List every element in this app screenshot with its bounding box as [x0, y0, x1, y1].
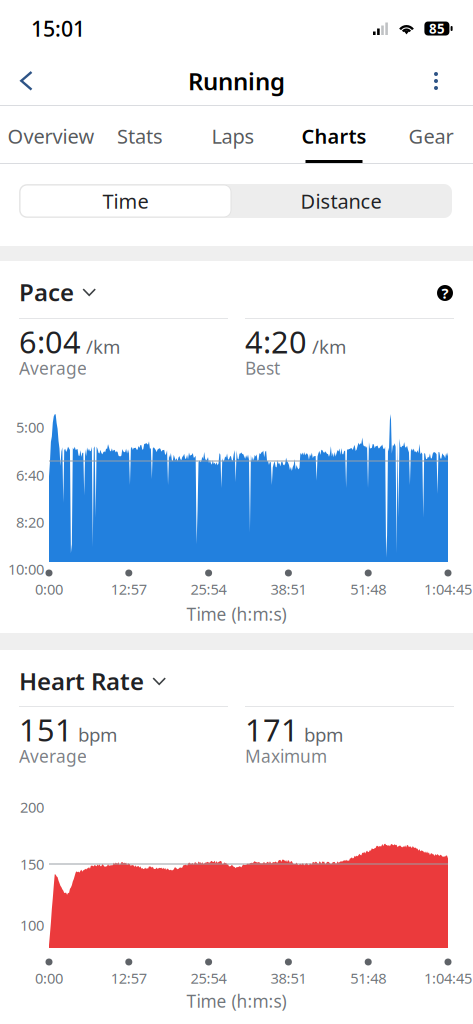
staticText: 6:04 — [19, 321, 81, 362]
staticText: 150 — [20, 854, 44, 874]
button[interactable]: Pace — [19, 279, 259, 305]
staticText: Average — [19, 744, 87, 767]
button[interactable]: Gear — [385, 106, 473, 163]
staticText: 12:57 — [111, 579, 147, 599]
staticText: Best — [245, 356, 280, 379]
staticText: Distance — [300, 188, 381, 214]
staticText: 15:01 — [31, 14, 85, 43]
staticText: 5:00 — [16, 417, 44, 437]
button[interactable]: Stats — [92, 106, 188, 163]
staticText: Charts — [301, 123, 366, 149]
staticText: bpm — [73, 722, 117, 747]
staticText: 100 — [20, 915, 44, 935]
staticText: 12:57 — [111, 968, 147, 988]
staticText: Average — [19, 356, 87, 379]
staticText: bpm — [299, 722, 343, 747]
staticText: Maximum — [245, 744, 327, 767]
staticText: 38:51 — [270, 968, 306, 988]
staticText: Running — [188, 65, 285, 97]
button[interactable]: Heart Rate — [19, 668, 259, 694]
staticText: 25:54 — [191, 968, 227, 988]
staticText: 51:48 — [350, 579, 386, 599]
staticText: Gear — [408, 123, 453, 149]
button[interactable]: Time — [20, 185, 231, 217]
staticText: 200 — [20, 797, 44, 817]
staticText: 0:00 — [35, 968, 63, 988]
staticText: 8:20 — [16, 512, 44, 532]
button[interactable]: Distance — [231, 185, 451, 217]
staticText: ? — [441, 283, 448, 303]
staticText: 6:40 — [16, 465, 44, 485]
staticText: 85 — [429, 20, 445, 37]
staticText: 171 — [245, 709, 299, 750]
staticText: 1:04:45 — [424, 968, 472, 988]
staticText: Pace — [19, 276, 74, 308]
staticText: Time (h:m:s) — [186, 989, 286, 1012]
staticText: /km — [81, 334, 120, 359]
staticText: Heart Rate — [19, 665, 144, 697]
button[interactable]: Charts — [287, 106, 381, 163]
staticText: 10:00 — [8, 559, 44, 579]
staticText: 1:04:45 — [424, 579, 472, 599]
staticText: 0:00 — [35, 579, 63, 599]
button[interactable]: Overview — [6, 106, 96, 163]
staticText: 25:54 — [191, 579, 227, 599]
staticText: Time — [102, 188, 148, 214]
button[interactable]: Laps — [185, 106, 281, 163]
staticText: /km — [307, 334, 346, 359]
staticText: 4:20 — [245, 321, 307, 362]
button[interactable]: More options — [413, 57, 459, 105]
staticText: Stats — [117, 123, 163, 149]
staticText: 151 — [19, 709, 73, 750]
staticText: 38:51 — [270, 579, 306, 599]
staticText: Time (h:m:s) — [186, 602, 286, 625]
button[interactable]: Back — [4, 57, 50, 105]
button[interactable]: Help — [436, 284, 454, 302]
staticText: 51:48 — [350, 968, 386, 988]
staticText: Overview — [7, 123, 94, 149]
staticText: Laps — [211, 123, 254, 149]
